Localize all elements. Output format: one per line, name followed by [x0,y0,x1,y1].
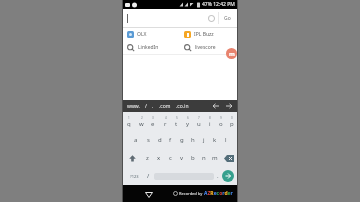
button[interactable]: 4 [159,113,171,131]
staticText: d [158,136,162,144]
button[interactable]: g [176,131,187,149]
staticText: Recorded by [179,191,204,196]
staticText: b [191,154,195,162]
button[interactable]: c [165,149,176,167]
button[interactable]: s [142,131,154,149]
staticText: . [152,103,154,110]
button[interactable]: 2 [135,113,147,131]
button[interactable]: a [130,131,142,149]
staticText: r [164,120,167,128]
staticText: 0 [231,116,233,120]
button[interactable]: n [198,149,209,167]
staticText: / [145,103,147,110]
staticText: OLX [137,31,147,38]
button[interactable]: .com [159,103,171,110]
button[interactable] [222,170,234,182]
button[interactable]: l [220,131,231,149]
staticText: 2 [141,116,143,120]
staticText: t [175,120,178,128]
button[interactable]: . [214,167,222,185]
staticText: m [229,50,235,58]
staticText: www. [127,103,140,110]
staticText: m [212,154,218,162]
staticText: e [151,120,155,128]
staticText: .co.in [176,103,189,110]
staticText: q [127,120,131,128]
staticText: c [169,154,172,162]
staticText: v [180,154,184,162]
staticText: a [134,136,138,144]
staticText: LinkedIn [138,44,159,51]
staticText: o [219,120,223,128]
button[interactable] [220,149,237,167]
staticText: j [203,136,205,144]
staticText: / [147,172,150,180]
staticText: x [157,154,161,162]
staticText: . [217,172,219,180]
staticText: Go [224,15,231,22]
staticText: .com [159,103,171,110]
staticText: h [191,136,195,144]
button[interactable]: IPL Buzz [180,28,237,41]
staticText: l [225,136,227,144]
button[interactable]: . [152,103,154,110]
button[interactable]: OLX [123,28,180,41]
staticText: 5 [176,116,178,120]
button[interactable]: 9 [215,113,226,131]
button[interactable]: h [187,131,198,149]
staticText: p [230,120,234,128]
staticText: 6 [187,116,189,120]
staticText: livescore [195,44,216,51]
button[interactable]: 0 [226,113,237,131]
button[interactable]: LinkedIn [123,41,180,54]
button[interactable]: f [165,131,176,149]
button[interactable]: / [142,167,154,185]
button[interactable] [208,15,215,22]
button[interactable]: Go [222,13,233,24]
staticText: ?123 [130,174,139,179]
button[interactable]: / [145,103,147,110]
staticText: 3 [152,116,154,120]
button[interactable]: x [153,149,165,167]
staticText: s [147,136,150,144]
button[interactable]: 7 [193,113,204,131]
button[interactable]: j [198,131,209,149]
button[interactable]: www. [127,103,140,110]
button[interactable]: 1 [123,113,135,131]
button[interactable]: m [226,48,237,59]
button[interactable]: d [154,131,165,149]
button[interactable]: 8 [204,113,215,131]
staticText: k [213,136,217,144]
button[interactable]: v [176,149,187,167]
staticText: g [180,136,184,144]
staticText: 4 [165,116,167,120]
button[interactable]: 3 [147,113,159,131]
staticText: 9 [220,116,222,120]
staticText: f [169,136,172,144]
button[interactable] [213,103,233,109]
staticText: IPL Buzz [194,31,214,38]
staticText: i [209,120,211,128]
button[interactable]: livescore [180,41,237,54]
button[interactable]: ?123 [126,167,142,185]
button[interactable]: b [187,149,198,167]
button[interactable]: 6 [182,113,193,131]
staticText: 47% 12:42 PM [202,1,235,8]
staticText: w [139,120,144,128]
button[interactable] [143,190,154,199]
staticText: AZRecorder [204,190,233,197]
button[interactable]: 5 [171,113,182,131]
staticText: 8 [209,116,211,120]
button[interactable]: z [141,149,153,167]
staticText: z [146,154,149,162]
button[interactable]: .co.in [176,103,189,110]
button[interactable]: k [209,131,220,149]
button[interactable] [123,149,141,167]
staticText: 7 [198,116,200,120]
button[interactable]: m [209,149,220,167]
staticText: y [186,120,190,128]
staticText: n [202,154,206,162]
staticText: u [197,120,201,128]
staticText: 1 [128,116,130,120]
